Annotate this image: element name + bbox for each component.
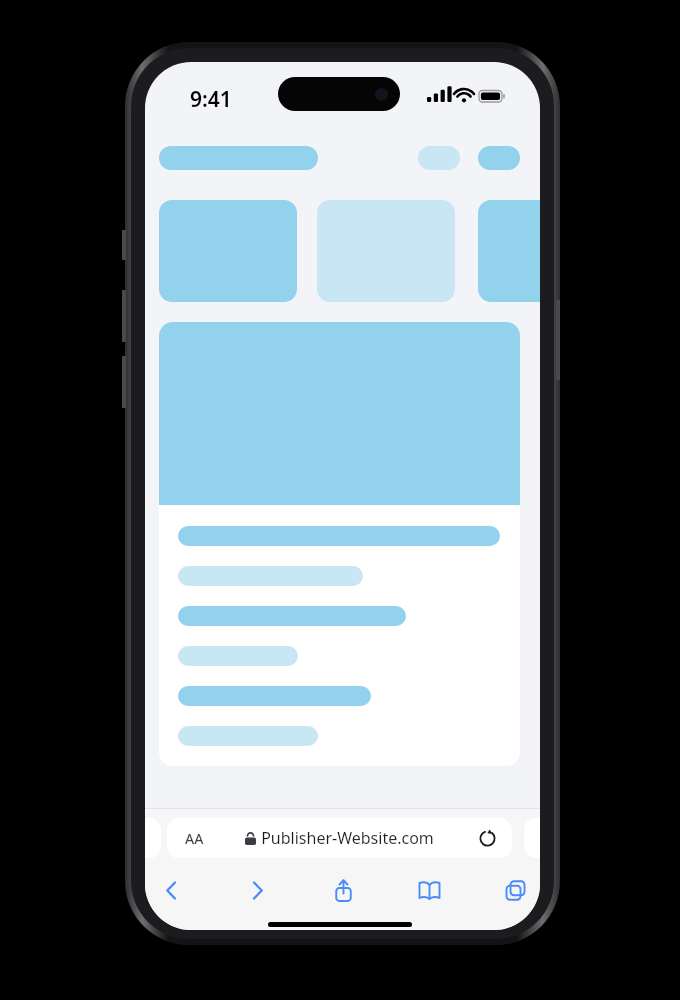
button[interactable]: Back — [151, 870, 191, 910]
button[interactable]: Reload — [474, 825, 500, 851]
button[interactable] — [159, 322, 520, 766]
button[interactable] — [159, 146, 318, 170]
button[interactable]: Tabs — [495, 870, 535, 910]
staticText: 9:41 — [190, 85, 232, 114]
button[interactable] — [418, 146, 460, 170]
button[interactable]: Forward — [237, 870, 277, 910]
staticText: AA — [185, 829, 204, 848]
button[interactable] — [478, 146, 520, 170]
staticText: Publisher-Website.com — [261, 827, 434, 849]
button[interactable] — [159, 200, 297, 302]
button[interactable]: AA — [167, 818, 512, 858]
button[interactable]: Share — [323, 870, 363, 910]
button[interactable] — [317, 200, 455, 302]
button[interactable] — [478, 200, 540, 302]
button[interactable]: Bookmarks — [409, 870, 449, 910]
